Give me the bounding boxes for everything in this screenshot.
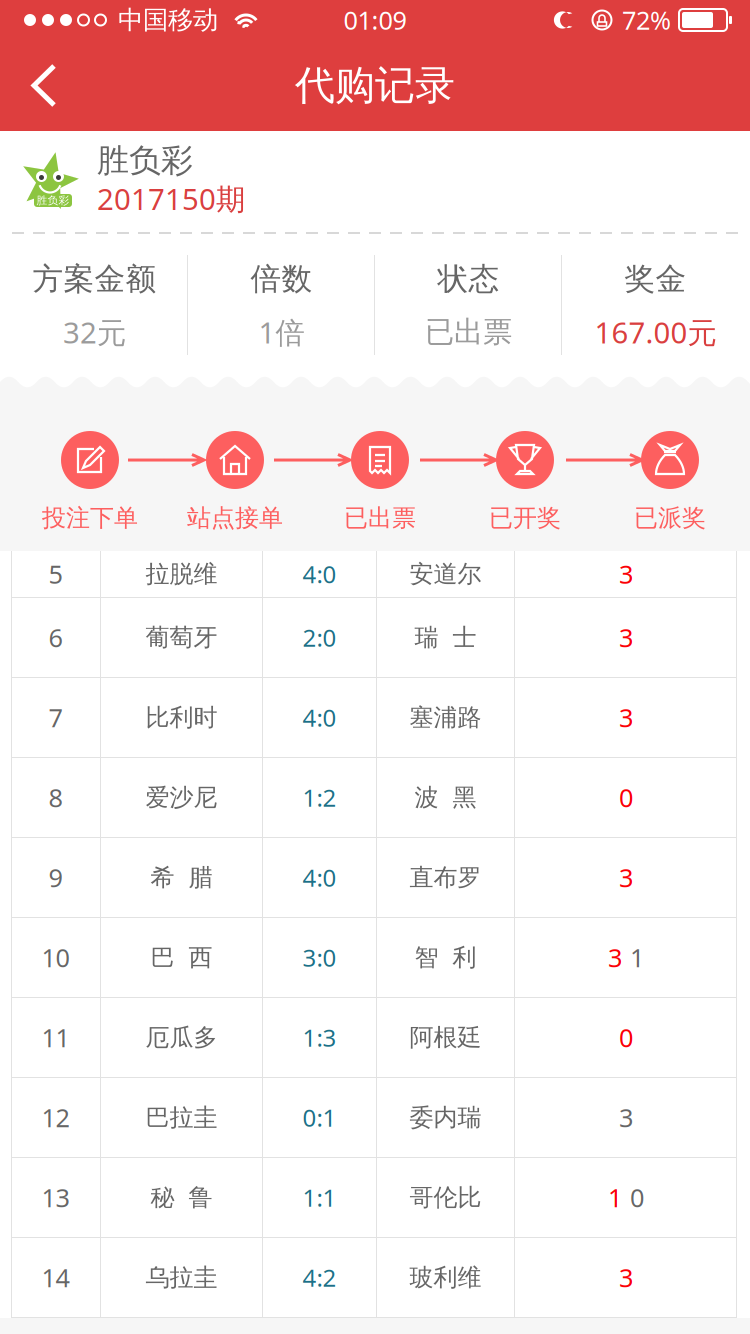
staticText: 0	[619, 1021, 633, 1054]
staticText: 0	[619, 781, 633, 814]
staticText: 巴拉圭	[145, 1103, 217, 1132]
staticText: 状态	[437, 260, 499, 298]
staticText: 4:0	[302, 862, 336, 893]
staticText: 玻利维	[409, 1263, 481, 1292]
staticText: 塞浦路	[409, 703, 481, 732]
staticText: 14	[41, 1261, 69, 1294]
staticText: 哥伦比	[409, 1183, 481, 1212]
staticText: 0	[630, 1181, 644, 1214]
staticText: 拉脱维	[145, 559, 217, 589]
button[interactable]: 投注下单	[17, 431, 162, 531]
staticText: 5	[48, 557, 62, 591]
staticText: 3:0	[302, 942, 336, 973]
staticText: 13	[41, 1181, 69, 1214]
staticText: 投注下单	[42, 503, 138, 533]
staticText: 代购记录	[295, 61, 455, 110]
staticText: 6	[48, 621, 62, 654]
staticText: 阿根廷	[409, 1023, 481, 1052]
staticText: 安道尔	[409, 559, 481, 589]
button[interactable]: Back	[0, 40, 82, 130]
staticText: 已派奖	[634, 503, 706, 533]
staticText: 4:0	[302, 702, 336, 733]
staticText: 3	[619, 701, 633, 734]
staticText: 胜负彩	[97, 141, 193, 180]
staticText: 1:3	[302, 1022, 336, 1053]
staticText: 葡萄牙	[145, 623, 217, 652]
staticText: 2:0	[302, 622, 336, 653]
staticText: 中国移动	[118, 4, 218, 35]
button[interactable]: 已出票	[307, 431, 452, 531]
staticText: 1:2	[302, 782, 336, 813]
staticText: 厄瓜多	[145, 1023, 217, 1052]
staticText: 方案金额	[32, 260, 156, 298]
staticText: 1:1	[302, 1182, 336, 1213]
staticText: 4:2	[302, 1262, 336, 1293]
staticText: 3	[608, 941, 622, 974]
staticText: 12	[41, 1101, 69, 1134]
staticText: 比利时	[145, 703, 217, 732]
staticText: 波 黑	[414, 783, 476, 812]
staticText: 直布罗	[409, 863, 481, 892]
staticText: 奖金	[624, 260, 686, 298]
staticText: 9	[48, 861, 62, 894]
staticText: 瑞 士	[414, 623, 476, 652]
staticText: 4:0	[302, 558, 336, 590]
staticText: 秘 鲁	[150, 1183, 212, 1212]
staticText: 已开奖	[489, 503, 561, 533]
staticText: 10	[41, 941, 69, 974]
staticText: 倍数	[250, 260, 312, 298]
staticText: 已出票	[425, 314, 512, 350]
staticText: 3	[619, 557, 633, 591]
staticText: 11	[41, 1021, 69, 1054]
staticText: 1	[608, 1181, 622, 1214]
button[interactable]: 已开奖	[452, 431, 597, 531]
staticText: 1	[630, 941, 644, 974]
staticText: 智 利	[414, 943, 476, 972]
staticText: 01:09	[343, 3, 406, 37]
staticText: 32元	[63, 312, 126, 351]
button[interactable]: 站点接单	[162, 431, 307, 531]
staticText: 2017150期	[97, 179, 245, 218]
staticText: 7	[48, 701, 62, 734]
staticText: 爱沙尼	[145, 783, 217, 812]
staticText: 8	[48, 781, 62, 814]
staticText: 3	[619, 1261, 633, 1294]
staticText: 巴 西	[150, 943, 212, 972]
staticText: 167.00元	[594, 312, 716, 351]
staticText: 已出票	[344, 503, 416, 533]
staticText: 3	[619, 621, 633, 654]
staticText: 希 腊	[150, 863, 212, 892]
staticText: 胜负彩	[36, 194, 69, 207]
staticText: 1倍	[258, 312, 304, 351]
staticText: 3	[619, 861, 633, 894]
button[interactable]: 已派奖	[597, 431, 742, 531]
staticText: 乌拉圭	[145, 1263, 217, 1292]
staticText: 委内瑞	[409, 1103, 481, 1132]
staticText: 站点接单	[187, 503, 283, 533]
staticText: 3	[619, 1101, 633, 1134]
staticText: 0:1	[302, 1102, 336, 1133]
staticText: 72%	[622, 3, 671, 37]
